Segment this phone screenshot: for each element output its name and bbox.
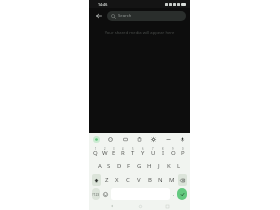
button[interactable]: Home xyxy=(136,202,144,210)
button[interactable]: N xyxy=(155,174,166,186)
staticText: Q xyxy=(93,149,98,157)
staticText: M xyxy=(169,176,175,184)
button[interactable]: C xyxy=(122,174,133,186)
staticText: I xyxy=(162,149,165,157)
button[interactable]: S xyxy=(104,160,114,172)
button[interactable]: Z xyxy=(102,174,112,186)
staticText: 14:46 xyxy=(98,2,108,7)
button[interactable]: 3 xyxy=(109,146,118,158)
button[interactable]: Settings xyxy=(150,136,157,143)
button[interactable]: Backspace xyxy=(178,174,187,186)
button[interactable]: ?123 xyxy=(92,188,100,200)
staticText: Your shared media will appear here xyxy=(89,30,190,36)
button[interactable]: Recents xyxy=(163,202,171,210)
button[interactable]: Back xyxy=(108,202,116,210)
button[interactable]: 8 xyxy=(158,146,168,158)
staticText: G xyxy=(137,162,142,170)
staticText: Search xyxy=(118,13,132,19)
button[interactable]: V xyxy=(133,174,144,186)
staticText: C xyxy=(126,176,130,184)
button[interactable]: Emoji xyxy=(101,188,110,200)
button[interactable]: K xyxy=(164,160,174,172)
button[interactable]: 7 xyxy=(148,146,158,158)
staticText: Y xyxy=(141,149,145,157)
staticText: S xyxy=(107,162,111,170)
staticText: P xyxy=(181,149,185,157)
button[interactable]: H xyxy=(144,160,154,172)
button[interactable]: 2 xyxy=(100,146,109,158)
staticText: V xyxy=(137,176,141,184)
staticText: 4 xyxy=(122,147,124,151)
staticText: R xyxy=(121,149,125,157)
button[interactable]: 5 xyxy=(128,146,138,158)
staticText: 6 xyxy=(142,147,144,151)
button[interactable]: Back xyxy=(93,10,104,21)
button[interactable]: Clipboard xyxy=(136,136,143,143)
staticText: L xyxy=(177,162,181,170)
staticText: 2 xyxy=(104,147,106,151)
button[interactable]: Enter xyxy=(177,188,187,200)
button[interactable]: Voice input xyxy=(179,136,186,143)
staticText: F xyxy=(127,162,131,170)
staticText: W xyxy=(102,149,108,157)
staticText: ?123 xyxy=(92,192,100,197)
button[interactable]: 1 xyxy=(91,146,100,158)
button[interactable]: Stickers xyxy=(107,136,114,143)
button[interactable]: 6 xyxy=(138,146,148,158)
staticText: X xyxy=(115,176,119,184)
button[interactable]: L xyxy=(174,160,184,172)
button[interactable]: G xyxy=(134,160,144,172)
button[interactable]: A xyxy=(95,160,104,172)
staticText: D xyxy=(117,162,122,170)
button[interactable]: Shift xyxy=(92,174,101,186)
staticText: T xyxy=(131,149,135,157)
button[interactable]: M xyxy=(166,174,177,186)
button[interactable]: X xyxy=(112,174,122,186)
button[interactable]: Google Assistant xyxy=(93,136,100,143)
staticText: K xyxy=(167,162,171,170)
staticText: 0 xyxy=(182,147,184,151)
staticText: E xyxy=(112,149,116,157)
staticText: 9 xyxy=(172,147,174,151)
button[interactable]: 9 xyxy=(168,146,178,158)
button[interactable]: J xyxy=(154,160,164,172)
staticText: 1 xyxy=(95,147,97,151)
staticText: . xyxy=(173,191,175,198)
button[interactable]: D xyxy=(114,160,124,172)
staticText: 3 xyxy=(113,147,115,151)
staticText: 5 xyxy=(132,147,134,151)
button[interactable]: Search xyxy=(107,11,186,21)
staticText: H xyxy=(147,162,152,170)
staticText: Z xyxy=(105,176,109,184)
button[interactable]: 0 xyxy=(178,146,188,158)
staticText: 8 xyxy=(162,147,164,151)
staticText: O xyxy=(171,149,176,157)
button[interactable]: F xyxy=(124,160,134,172)
button[interactable]: GIF xyxy=(122,136,129,143)
button[interactable]: . xyxy=(171,188,176,200)
staticText: N xyxy=(158,176,163,184)
staticText: 7 xyxy=(152,147,154,151)
staticText: J xyxy=(158,162,160,170)
staticText: U xyxy=(151,149,156,157)
button[interactable]: 4 xyxy=(118,146,128,158)
staticText: A xyxy=(98,162,102,170)
button[interactable]: More xyxy=(165,136,172,143)
staticText: B xyxy=(148,176,152,184)
button[interactable]: B xyxy=(144,174,155,186)
